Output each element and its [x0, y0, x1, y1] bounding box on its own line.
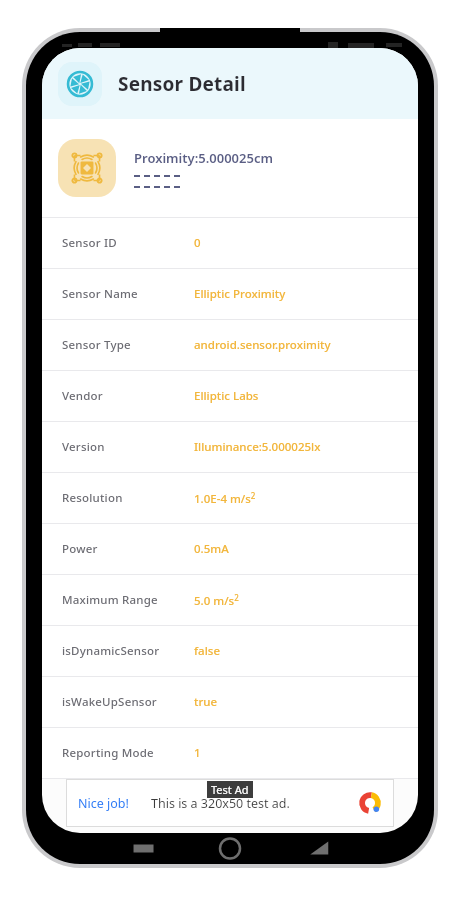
button[interactable]: isDynamicSensor [42, 626, 418, 676]
staticText: Sensor Name [62, 286, 138, 302]
staticText: isWakeUpSensor [62, 694, 157, 710]
staticText: Proximity:5.000025cm [134, 149, 273, 167]
staticText: Sensor ID [62, 235, 117, 251]
staticText: This is a 320x50 test ad. [151, 795, 290, 812]
staticText: Elliptic Proximity [194, 286, 286, 302]
staticText: false [194, 643, 220, 659]
staticText: Vendor [62, 388, 103, 404]
staticText: isDynamicSensor [62, 643, 160, 659]
staticText: Maximum Range [62, 592, 158, 608]
button[interactable]: isWakeUpSensor [42, 677, 418, 727]
staticText: Sensor Detail [118, 71, 246, 97]
staticText: Sensor Type [62, 337, 131, 353]
other: AdMob [358, 791, 382, 815]
button[interactable]: Sensor Name [42, 269, 418, 319]
button[interactable]: Sensor app icon [58, 62, 102, 106]
button[interactable]: Sensor Type [42, 320, 418, 370]
staticText: 5.0 m/s2 [194, 592, 239, 608]
button[interactable]: Resolution [42, 473, 418, 523]
staticText: true [194, 694, 218, 710]
button[interactable]: Power [42, 524, 418, 574]
staticText: Elliptic Labs [194, 388, 259, 404]
staticText: Power [62, 541, 98, 557]
button[interactable]: Reporting Mode [42, 728, 418, 778]
button[interactable]: Vendor [42, 371, 418, 421]
staticText: Illuminance:5.000025lx [194, 439, 321, 455]
button[interactable]: Sensor ID [42, 218, 418, 268]
staticText: android.sensor.proximity [194, 337, 331, 353]
staticText: Nice job! [78, 795, 129, 812]
button[interactable]: Maximum Range [42, 575, 418, 625]
staticText: Reporting Mode [62, 745, 154, 761]
staticText: 0 [194, 235, 201, 251]
staticText: Resolution [62, 490, 123, 506]
button[interactable]: Proximity:5.000025cm [42, 119, 418, 217]
button[interactable]: Version [42, 422, 418, 472]
button[interactable]: Nice job! [66, 779, 394, 827]
staticText: Test Ad [211, 782, 249, 797]
staticText: 1.0E-4 m/s2 [194, 490, 256, 506]
staticText: Version [62, 439, 105, 455]
staticText: 0.5mA [194, 541, 229, 557]
staticText: 1 [194, 745, 201, 761]
